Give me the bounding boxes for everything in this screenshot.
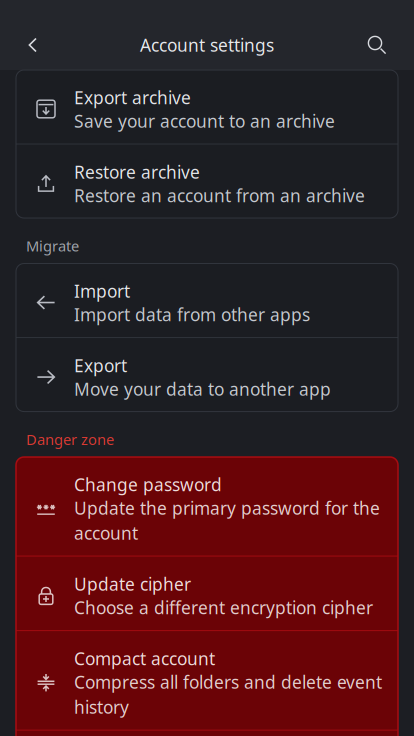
button[interactable]: Search [354,22,404,68]
staticText: Danger zone [26,429,114,449]
staticText: Save your account to an archive [74,109,335,132]
staticText: Import [74,279,130,302]
staticText: Compress all folders and delete event hi… [74,671,382,719]
button[interactable]: Export [16,338,398,411]
staticText: Move your data to another app [74,377,331,400]
staticText: Restore an account from an archive [74,184,365,207]
staticText: Export [74,354,127,377]
staticText: Update cipher [74,573,191,596]
staticText: Migrate [26,236,79,255]
button[interactable]: Delete account [16,731,398,736]
staticText: Account settings [140,33,274,56]
button[interactable]: Compact account [16,631,398,730]
button[interactable]: Back [10,22,56,68]
staticText: Update the primary password for the acco… [74,496,380,544]
staticText: Change password [74,473,222,496]
button[interactable]: Restore archive [16,144,398,218]
staticText: Import data from other apps [74,303,310,326]
staticText: Export archive [74,86,191,109]
button[interactable]: Import [16,263,398,337]
button[interactable]: Change password [16,457,398,555]
button[interactable]: Export archive [16,70,398,143]
staticText: Choose a different encryption cipher [74,596,373,619]
staticText: Compact account [74,647,215,670]
staticText: Restore archive [74,160,200,183]
button[interactable]: Update cipher [16,557,398,630]
